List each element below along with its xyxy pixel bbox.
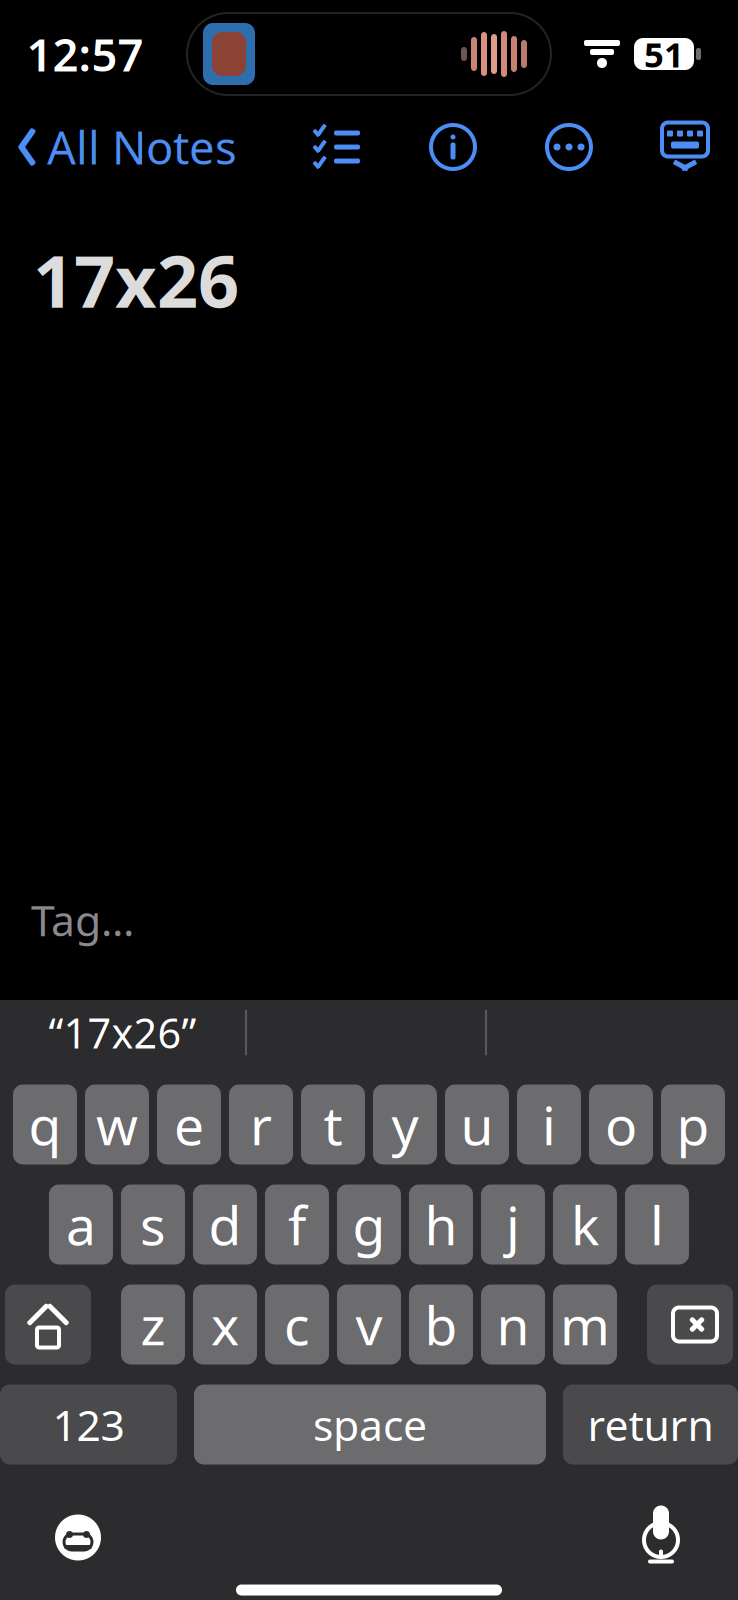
button[interactable]: Emoji xyxy=(43,1498,113,1576)
button[interactable]: l xyxy=(625,1184,689,1264)
button[interactable]: h xyxy=(409,1184,473,1264)
button[interactable]: k xyxy=(553,1184,617,1264)
button[interactable]: f xyxy=(265,1184,329,1264)
staticText: 123 xyxy=(52,1396,124,1453)
staticText: s xyxy=(140,1189,166,1260)
button[interactable]: return xyxy=(563,1384,738,1464)
staticText: v xyxy=(355,1289,382,1360)
button[interactable]: Info xyxy=(417,111,489,183)
button[interactable]: Delete xyxy=(647,1284,733,1364)
staticText: r xyxy=(250,1089,272,1160)
staticText: q xyxy=(28,1089,61,1160)
button[interactable]: e xyxy=(157,1084,221,1164)
button[interactable] xyxy=(487,998,738,1066)
button[interactable]: m xyxy=(553,1284,617,1364)
button[interactable]: t xyxy=(301,1084,365,1164)
button[interactable]: i xyxy=(517,1084,581,1164)
staticText: a xyxy=(66,1189,96,1260)
staticText: y xyxy=(391,1089,418,1160)
staticText: c xyxy=(284,1289,310,1360)
staticText: “17x26” xyxy=(48,1005,196,1060)
button[interactable]: z xyxy=(121,1284,185,1364)
staticText: Tag... xyxy=(31,891,134,948)
button[interactable] xyxy=(247,998,485,1066)
staticText: h xyxy=(424,1189,457,1260)
staticText: All Notes xyxy=(47,117,237,177)
staticText: j xyxy=(506,1189,520,1260)
button[interactable]: Checklist xyxy=(301,113,373,181)
button[interactable]: Dictation xyxy=(631,1498,691,1576)
staticText: t xyxy=(323,1089,342,1160)
button[interactable]: p xyxy=(661,1084,725,1164)
button[interactable]: space xyxy=(194,1384,546,1464)
button[interactable]: b xyxy=(409,1284,473,1364)
staticText: w xyxy=(96,1089,138,1160)
button[interactable]: u xyxy=(445,1084,509,1164)
button[interactable]: q xyxy=(13,1084,77,1164)
staticText: l xyxy=(650,1189,664,1260)
button[interactable]: More xyxy=(533,111,605,183)
button[interactable]: d xyxy=(193,1184,257,1264)
button[interactable]: c xyxy=(265,1284,329,1364)
staticText: x xyxy=(211,1289,239,1360)
staticText: o xyxy=(605,1089,637,1160)
staticText: z xyxy=(140,1289,165,1360)
button[interactable]: Shift xyxy=(5,1284,91,1364)
button[interactable]: Hide Keyboard xyxy=(649,111,721,183)
button[interactable]: 123 xyxy=(0,1384,177,1464)
button[interactable]: All Notes xyxy=(0,107,237,187)
staticText: k xyxy=(571,1189,599,1260)
staticText: d xyxy=(208,1189,241,1260)
staticText: m xyxy=(560,1289,610,1360)
staticText: i xyxy=(542,1089,556,1160)
button[interactable]: g xyxy=(337,1184,401,1264)
button[interactable]: “17x26” xyxy=(0,998,245,1066)
staticText: 12:57 xyxy=(26,24,143,84)
button[interactable]: w xyxy=(85,1084,149,1164)
button[interactable]: o xyxy=(589,1084,653,1164)
staticText: 51 xyxy=(644,31,684,77)
staticText: u xyxy=(460,1089,493,1160)
button[interactable]: n xyxy=(481,1284,545,1364)
button[interactable]: x xyxy=(193,1284,257,1364)
staticText: e xyxy=(174,1089,204,1160)
staticText: b xyxy=(424,1289,457,1360)
staticText: f xyxy=(288,1189,306,1260)
button[interactable]: r xyxy=(229,1084,293,1164)
staticText: g xyxy=(352,1189,385,1260)
staticText: p xyxy=(676,1089,709,1160)
button[interactable]: s xyxy=(121,1184,185,1264)
staticText: space xyxy=(313,1396,427,1453)
button[interactable]: v xyxy=(337,1284,401,1364)
staticText: n xyxy=(496,1289,529,1360)
button[interactable]: j xyxy=(481,1184,545,1264)
staticText: 17x26 xyxy=(33,232,239,328)
staticText: return xyxy=(587,1396,713,1453)
button[interactable]: a xyxy=(49,1184,113,1264)
button[interactable]: Tag... xyxy=(31,885,134,954)
button[interactable]: y xyxy=(373,1084,437,1164)
